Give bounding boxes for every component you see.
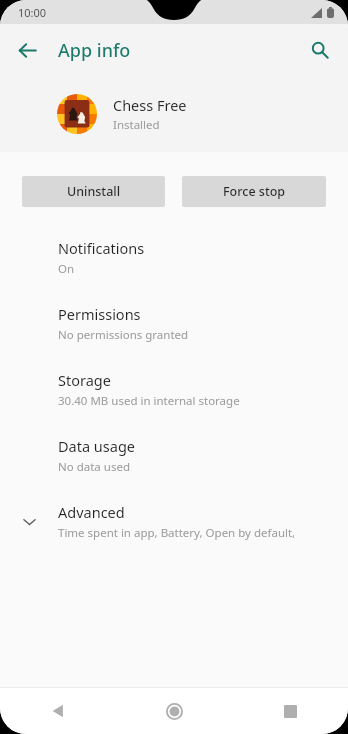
staticText: On <box>58 261 75 277</box>
staticText: No data used <box>58 459 130 475</box>
staticText: Storage <box>58 370 111 390</box>
staticText: Advanced <box>58 502 125 522</box>
staticText: Force stop <box>223 183 286 200</box>
button[interactable]: Data usage <box>0 422 348 488</box>
button[interactable]: Force stop <box>182 176 326 207</box>
staticText: Chess Free <box>113 95 187 115</box>
button[interactable]: Back <box>7 30 47 70</box>
button[interactable]: Recents <box>232 688 348 734</box>
button[interactable]: Notifications <box>0 224 348 290</box>
staticText: Data usage <box>58 436 135 456</box>
staticText: Permissions <box>58 304 141 324</box>
button[interactable]: Home <box>116 688 232 734</box>
button[interactable]: Back <box>0 688 116 734</box>
staticText: Time spent in app, Battery, Open by defa… <box>58 525 338 541</box>
staticText: 10:00 <box>18 5 47 20</box>
staticText: Uninstall <box>67 183 121 200</box>
button[interactable]: Search <box>300 30 340 70</box>
button[interactable]: Chess Free <box>0 76 348 152</box>
button[interactable]: Uninstall <box>22 176 165 207</box>
staticText: Installed <box>113 117 160 133</box>
button[interactable]: Permissions <box>0 290 348 356</box>
staticText: No permissions granted <box>58 327 189 343</box>
button[interactable]: Storage <box>0 356 348 422</box>
staticText: App info <box>58 38 131 63</box>
staticText: Notifications <box>58 238 145 258</box>
staticText: 30.40 MB used in internal storage <box>58 393 240 409</box>
button[interactable]: Advanced <box>0 488 348 554</box>
